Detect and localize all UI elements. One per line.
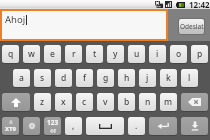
staticText: q bbox=[8, 48, 14, 60]
button[interactable]: k bbox=[160, 69, 177, 87]
staticText: g bbox=[103, 72, 109, 84]
staticText: c bbox=[82, 96, 87, 108]
button[interactable]: i bbox=[149, 45, 166, 63]
staticText: e bbox=[50, 48, 55, 60]
staticText: l bbox=[188, 72, 191, 84]
staticText: 12:42 bbox=[189, 0, 210, 8]
staticText: j bbox=[146, 72, 149, 84]
button[interactable]: z bbox=[34, 93, 51, 111]
staticText: i bbox=[156, 48, 159, 60]
button[interactable]: Settings bbox=[23, 117, 40, 135]
staticText: a bbox=[19, 72, 24, 84]
staticText: f bbox=[83, 72, 87, 84]
button[interactable]: a bbox=[13, 69, 30, 87]
staticText: n bbox=[145, 96, 151, 108]
staticText: t bbox=[93, 48, 97, 60]
staticText: p bbox=[197, 48, 203, 60]
button[interactable]: h bbox=[118, 69, 135, 87]
button[interactable]: Shift bbox=[2, 93, 30, 111]
staticText: k bbox=[166, 72, 171, 84]
staticText: u bbox=[134, 48, 140, 60]
button[interactable]: w bbox=[23, 45, 40, 63]
button[interactable]: c bbox=[76, 93, 93, 111]
button[interactable]: g bbox=[97, 69, 114, 87]
staticText: m bbox=[164, 96, 173, 108]
button[interactable]: Ahoj bbox=[2, 11, 166, 39]
button[interactable]: t bbox=[86, 45, 103, 63]
button[interactable]: Enter bbox=[149, 117, 177, 135]
staticText: . bbox=[135, 120, 138, 132]
staticText: w bbox=[28, 48, 35, 60]
staticText: d bbox=[61, 72, 67, 84]
staticText: Odeslat bbox=[180, 22, 204, 31]
button[interactable]: u bbox=[128, 45, 145, 63]
button[interactable]: p bbox=[191, 45, 208, 63]
staticText: b bbox=[124, 96, 130, 108]
staticText: z bbox=[40, 96, 45, 108]
button[interactable]: r bbox=[65, 45, 82, 63]
button[interactable]: Backspace bbox=[181, 93, 208, 111]
button[interactable]: Hide keyboard bbox=[181, 117, 208, 135]
staticText: XT9 bbox=[5, 125, 16, 133]
button[interactable]: y bbox=[107, 45, 124, 63]
button[interactable]: . bbox=[128, 117, 145, 135]
staticText: ! bbox=[54, 127, 56, 135]
button[interactable]: v bbox=[97, 93, 114, 111]
staticText: o bbox=[176, 48, 182, 60]
button[interactable]: m bbox=[160, 93, 177, 111]
staticText: s bbox=[40, 72, 45, 84]
button[interactable]: XT9 bbox=[2, 117, 19, 135]
button[interactable]: b bbox=[118, 93, 135, 111]
staticText: 123 bbox=[47, 118, 59, 127]
button[interactable]: l bbox=[181, 69, 198, 87]
button[interactable]: d bbox=[55, 69, 72, 87]
staticText: y bbox=[113, 48, 118, 60]
staticText: x bbox=[61, 96, 66, 108]
staticText: v bbox=[103, 96, 108, 108]
staticText: h bbox=[124, 72, 130, 84]
staticText: , bbox=[72, 120, 75, 132]
button[interactable]: Numbers and symbols bbox=[44, 117, 61, 135]
button[interactable]: x bbox=[55, 93, 72, 111]
staticText: r bbox=[72, 48, 76, 60]
staticText: Ahoj bbox=[5, 13, 26, 26]
button[interactable]: n bbox=[139, 93, 156, 111]
button[interactable]: e bbox=[44, 45, 61, 63]
button[interactable]: , bbox=[65, 117, 82, 135]
button[interactable]: f bbox=[76, 69, 93, 87]
button[interactable]: j bbox=[139, 69, 156, 87]
button[interactable]: s bbox=[34, 69, 51, 87]
button[interactable]: Odeslat bbox=[179, 19, 204, 34]
button[interactable]: o bbox=[170, 45, 187, 63]
button[interactable]: Space bbox=[86, 117, 124, 135]
button[interactable]: q bbox=[2, 45, 19, 63]
